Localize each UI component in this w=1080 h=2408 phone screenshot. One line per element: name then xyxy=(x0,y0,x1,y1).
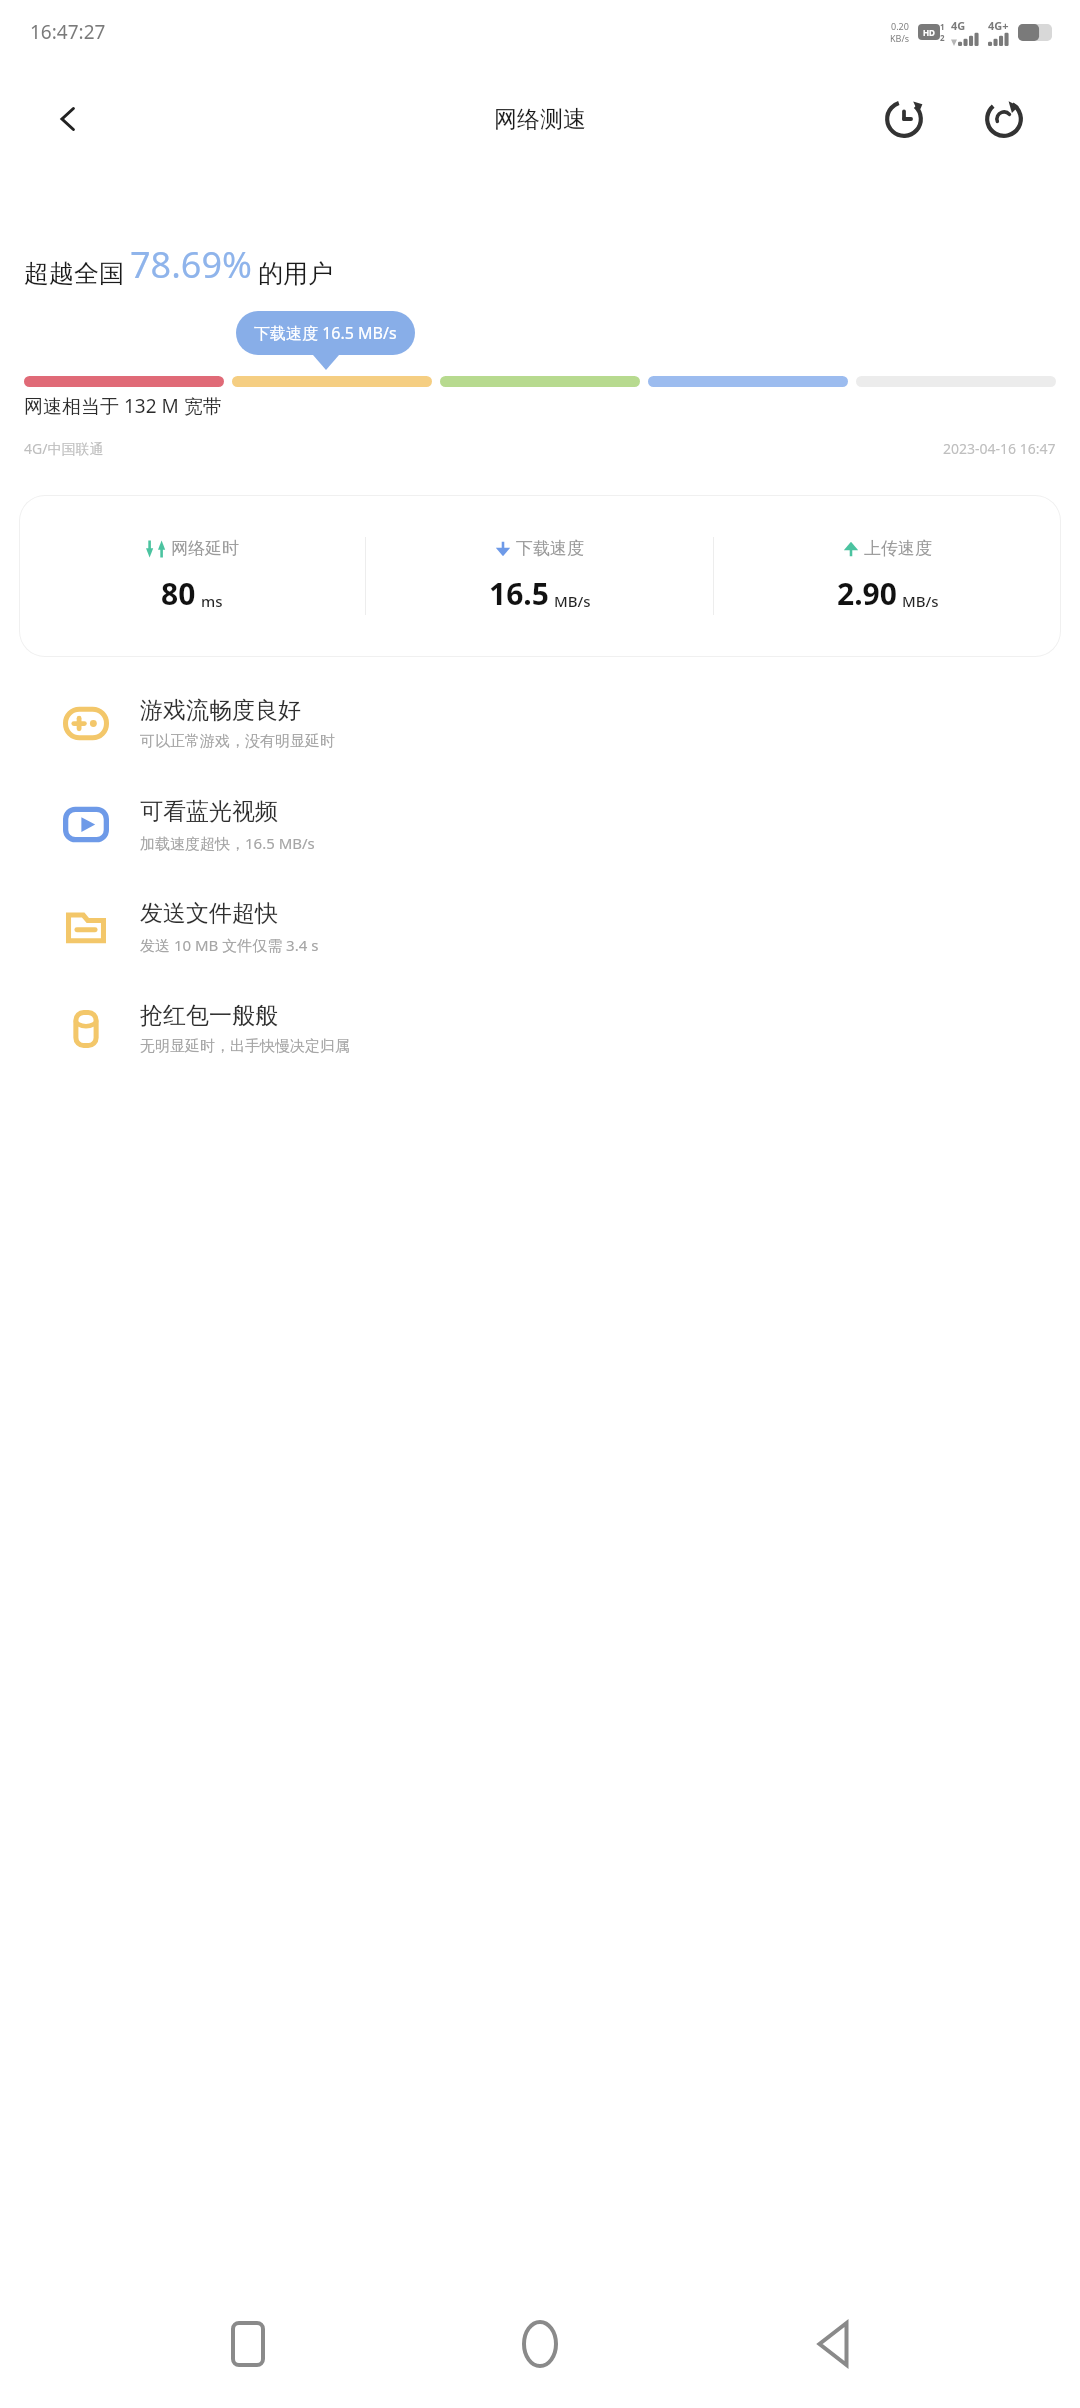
staticText: 网络延时 xyxy=(171,538,239,559)
staticText: 下载速度 xyxy=(516,538,584,559)
staticText: 下载速度 16.5 MB/s xyxy=(254,322,397,344)
button[interactable]: Retest xyxy=(972,87,1036,151)
staticText: 无明显延时，出手快慢决定归属 xyxy=(140,1037,350,1056)
staticText: 0.20 xyxy=(891,20,909,32)
staticText: 2023-04-16 16:47 xyxy=(943,439,1056,458)
staticText: 2.90 xyxy=(837,573,897,614)
staticText: 网络测速 xyxy=(494,105,586,134)
button[interactable]: Recents xyxy=(203,2299,293,2389)
staticText: 4G/中国联通 xyxy=(24,439,104,458)
staticText: 发送 10 MB 文件仅需 3.4 s xyxy=(140,935,319,955)
button[interactable]: 抢红包一般般 xyxy=(0,995,1080,1062)
staticText: 16.5 xyxy=(489,573,549,614)
button[interactable]: Home xyxy=(495,2299,585,2389)
staticText: 超越全国 xyxy=(24,258,124,289)
staticText: KB/s xyxy=(890,32,910,44)
staticText: 1 xyxy=(940,21,945,32)
staticText: 发送文件超快 xyxy=(140,899,278,928)
staticText: 4G xyxy=(951,18,966,33)
button[interactable]: Back xyxy=(40,91,96,147)
staticText: MB/s xyxy=(554,591,591,611)
staticText: MB/s xyxy=(902,591,939,611)
staticText: 加载速度超快，16.5 MB/s xyxy=(140,833,315,853)
staticText: 的用户 xyxy=(258,258,333,289)
button[interactable]: History xyxy=(872,87,936,151)
staticText: 游戏流畅度良好 xyxy=(140,696,301,725)
button[interactable]: 游戏流畅度良好 xyxy=(0,690,1080,757)
button[interactable]: Back xyxy=(788,2299,878,2389)
staticText: 80 xyxy=(161,573,196,614)
staticText: 16:47:27 xyxy=(30,19,106,45)
button[interactable]: 可看蓝光视频 xyxy=(0,791,1080,859)
staticText: 78.69% xyxy=(130,240,252,289)
staticText: 网速相当于 132 M 宽带 xyxy=(24,393,222,419)
staticText: 可看蓝光视频 xyxy=(140,797,278,826)
staticText: 可以正常游戏，没有明显延时 xyxy=(140,732,335,751)
staticText: 上传速度 xyxy=(864,538,932,559)
staticText: 抢红包一般般 xyxy=(140,1001,278,1030)
button[interactable]: 发送文件超快 xyxy=(0,893,1080,961)
staticText: 4G+ xyxy=(988,18,1009,33)
staticText: ms xyxy=(201,591,223,611)
staticText: HD xyxy=(923,27,935,38)
staticText: 2 xyxy=(940,32,945,43)
